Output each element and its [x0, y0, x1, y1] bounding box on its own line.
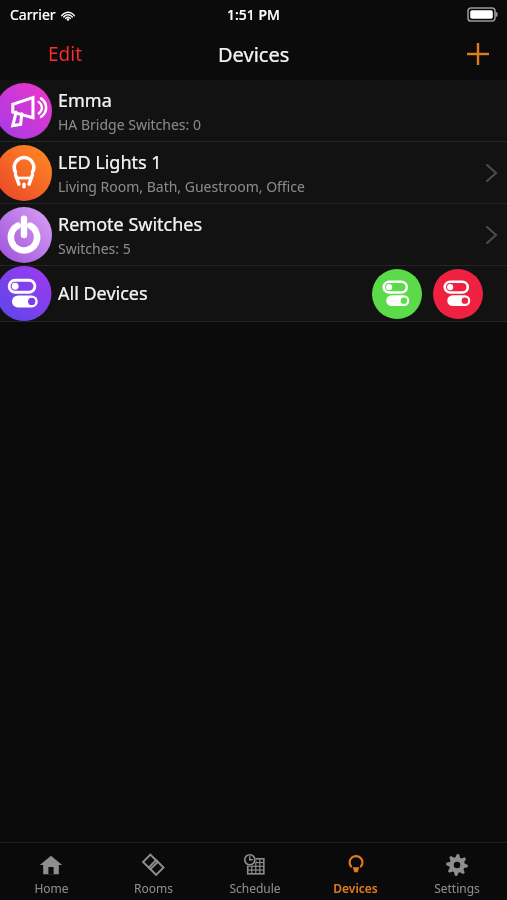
- staticText: LED Lights 1: [58, 150, 162, 175]
- button[interactable]: Turn all on: [372, 269, 422, 319]
- button[interactable]: LED Lights 1: [0, 142, 507, 203]
- staticText: Schedule: [229, 880, 281, 896]
- button[interactable]: Rooms: [102, 847, 204, 896]
- staticText: Rooms: [134, 880, 173, 896]
- staticText: All Devices: [58, 281, 372, 306]
- button[interactable]: Remote Switches: [0, 204, 507, 265]
- button[interactable]: Add device: [461, 37, 495, 71]
- button[interactable]: Devices: [305, 847, 406, 896]
- button[interactable]: Schedule: [204, 847, 305, 896]
- staticText: Switches: 5: [58, 239, 131, 258]
- staticText: HA Bridge Switches: 0: [58, 115, 201, 134]
- staticText: Emma: [58, 88, 112, 113]
- staticText: Edit: [48, 41, 83, 67]
- staticText: Carrier: [10, 5, 56, 24]
- staticText: Remote Switches: [58, 212, 203, 237]
- staticText: Living Room, Bath, Guestroom, Office: [58, 177, 305, 196]
- staticText: Devices: [218, 41, 290, 68]
- staticText: Home: [34, 880, 69, 896]
- button[interactable]: Turn all off: [433, 269, 483, 319]
- staticText: Settings: [434, 880, 480, 896]
- button[interactable]: Settings: [406, 847, 507, 896]
- button[interactable]: Emma: [0, 80, 507, 141]
- button[interactable]: Edit: [40, 35, 91, 73]
- button[interactable]: Home: [0, 847, 102, 896]
- button[interactable]: All Devices: [0, 266, 507, 321]
- staticText: 1:51 PM: [227, 5, 280, 24]
- staticText: Devices: [333, 880, 378, 896]
